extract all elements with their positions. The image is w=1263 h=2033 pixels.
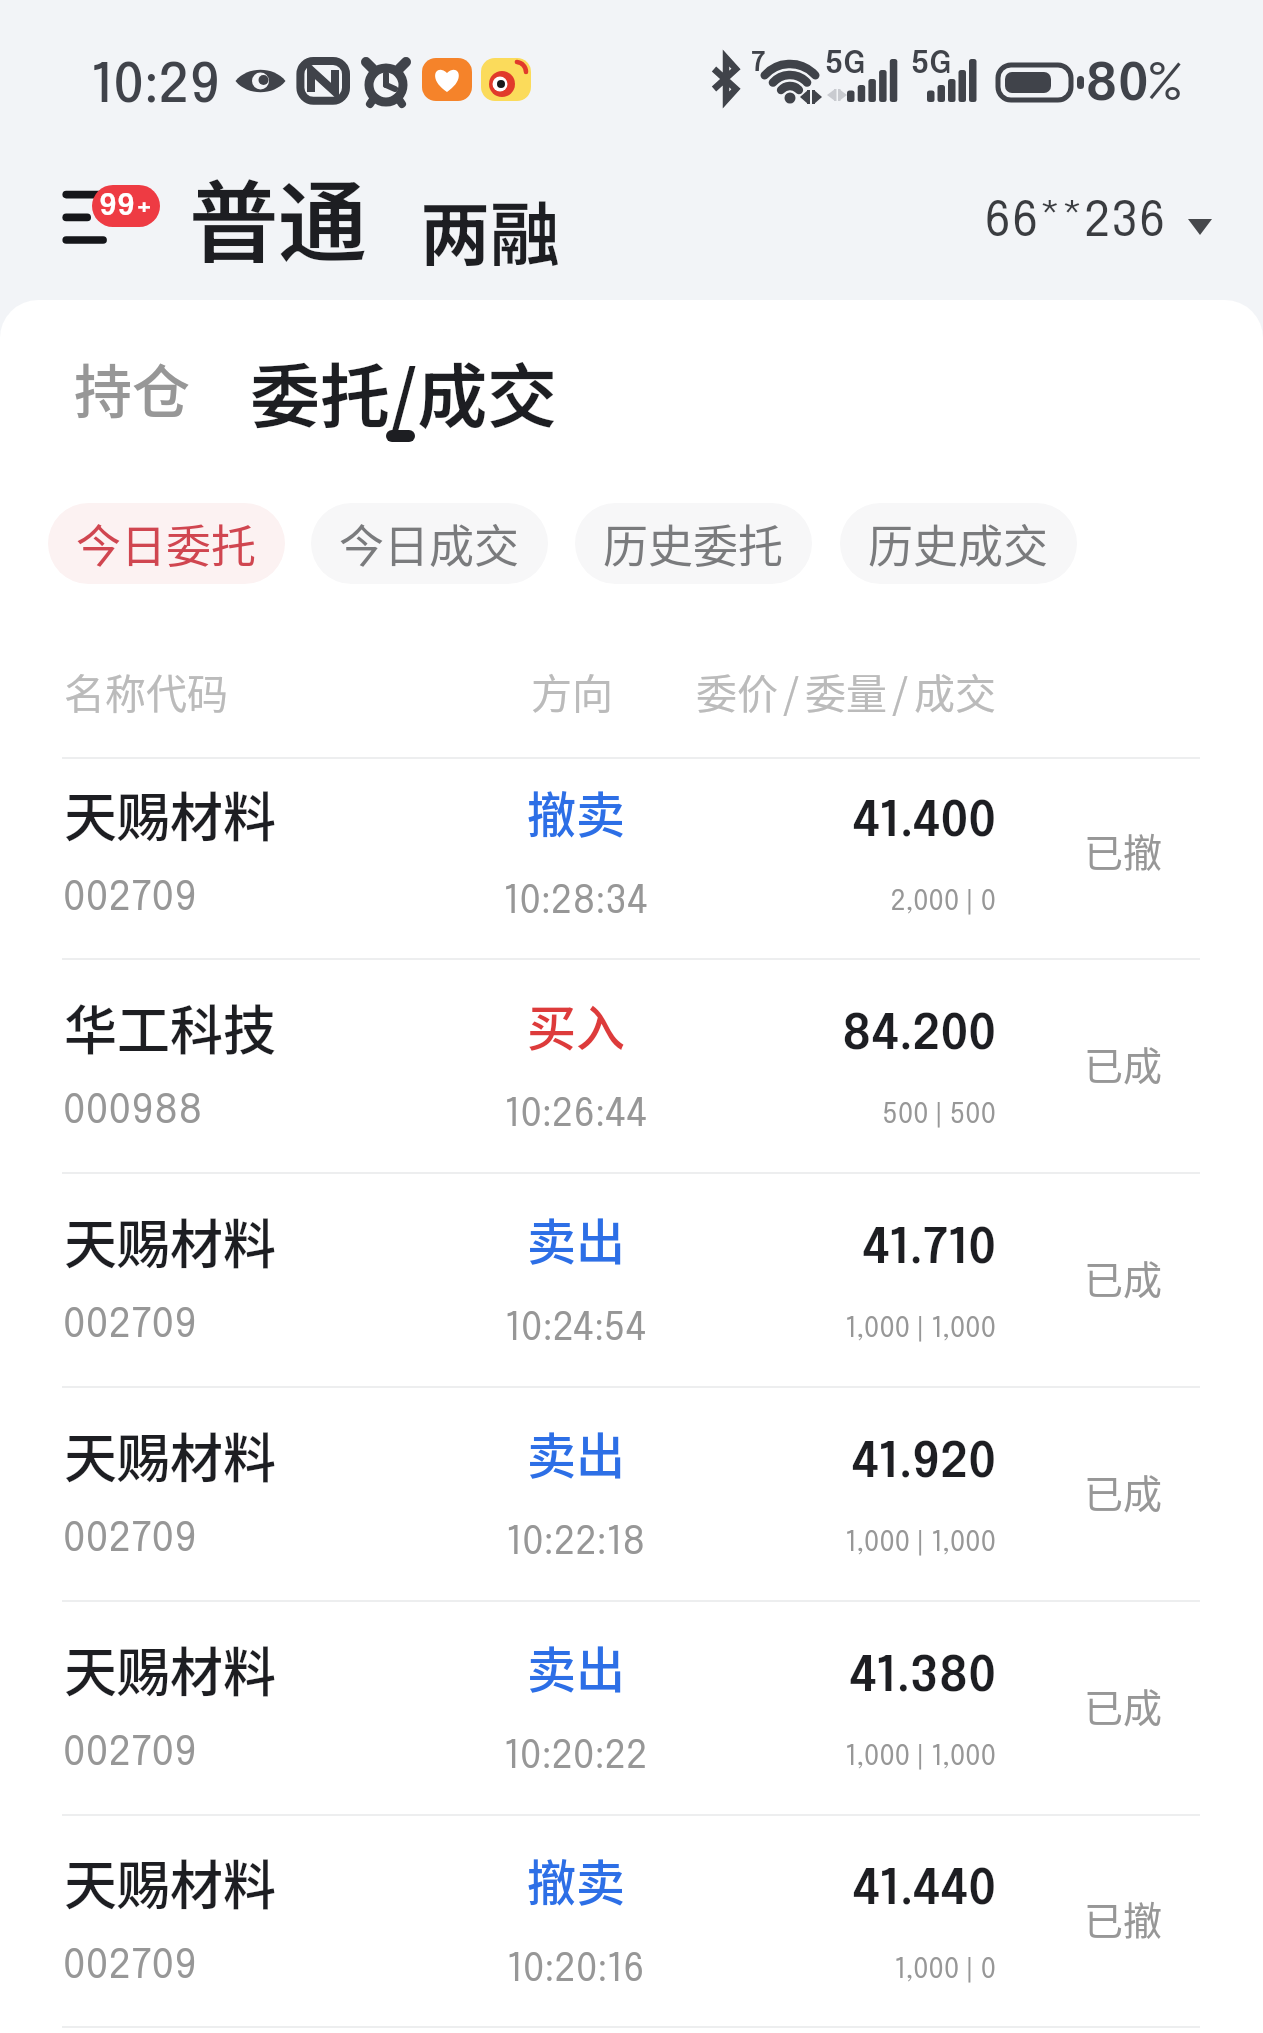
staticText: / (783, 661, 800, 720)
staticText: 持仓 (74, 346, 191, 430)
button[interactable]: 天赐材料 (0, 1600, 1263, 1814)
staticText: 买入 (446, 989, 706, 1060)
staticText: 成交 (914, 661, 996, 720)
staticText: 天赐材料 (64, 1417, 276, 1494)
button[interactable]: 今日委托 (48, 503, 285, 584)
staticText: 已撤 (1084, 822, 1163, 878)
button[interactable]: 两融 (420, 179, 560, 280)
staticText: 1,000 | 0 (696, 1957, 996, 1985)
button[interactable]: 历史委托 (575, 503, 812, 584)
button[interactable]: 持仓 (74, 346, 191, 430)
button[interactable]: 天赐材料 (0, 757, 1263, 958)
staticText: 002709 (63, 878, 197, 919)
staticText: 已成 (1084, 1249, 1163, 1305)
staticText: 002709 (63, 1519, 197, 1560)
staticText: 已成 (1084, 1035, 1163, 1091)
staticText: 99+ (99, 191, 154, 222)
button[interactable]: 历史成交 (840, 503, 1077, 584)
staticText: 41.440 (696, 1867, 996, 1915)
staticText: 已成 (1084, 1463, 1163, 1519)
staticText: 卖出 (446, 1203, 706, 1274)
staticText: 委托/成交 (250, 341, 558, 442)
staticText: 委量 (805, 661, 887, 720)
staticText: 41.920 (696, 1440, 996, 1488)
button[interactable]: 普通 (189, 152, 367, 281)
staticText: 今日成交 (339, 511, 520, 576)
staticText: 2,000 | 0 (696, 889, 996, 917)
staticText: / (892, 661, 909, 720)
staticText: 002709 (63, 1733, 197, 1774)
staticText: 历史成交 (868, 511, 1049, 576)
button[interactable]: 天赐材料 (0, 1172, 1263, 1386)
staticText: 华工科技 (64, 989, 276, 1066)
staticText: 80% (1085, 59, 1182, 112)
staticText: 10:24:54 (446, 1310, 706, 1349)
staticText: 41.710 (696, 1226, 996, 1274)
staticText: 两融 (420, 179, 560, 280)
staticText: 84.200 (696, 1012, 996, 1060)
staticText: 委价 (696, 661, 778, 720)
staticText: 5G (825, 49, 866, 81)
staticText: 天赐材料 (64, 1844, 276, 1921)
button[interactable]: 天赐材料 (0, 1814, 1263, 2026)
staticText: 002709 (63, 1946, 197, 1987)
staticText: 10:20:16 (446, 1951, 706, 1990)
staticText: 41.400 (696, 799, 996, 847)
button[interactable]: 66**236 (984, 198, 1212, 247)
staticText: 名称代码 (64, 661, 228, 720)
staticText: 天赐材料 (64, 776, 276, 853)
staticText: 41.380 (696, 1654, 996, 1702)
staticText: 普通 (189, 152, 367, 281)
staticText: 500 | 500 (696, 1102, 996, 1130)
button[interactable]: 华工科技 (0, 958, 1263, 1172)
button[interactable]: 天赐材料 (0, 1386, 1263, 1600)
staticText: 天赐材料 (64, 1631, 276, 1708)
staticText: 66**236 (984, 198, 1166, 247)
staticText: 10:20:22 (446, 1738, 706, 1777)
staticText: 卖出 (446, 1631, 706, 1702)
staticText: 今日委托 (76, 511, 257, 576)
staticText: 000988 (63, 1091, 203, 1132)
staticText: 1,000 | 1,000 (696, 1316, 996, 1344)
staticText: 卖出 (446, 1417, 706, 1488)
staticText: 方向 (442, 661, 702, 720)
staticText: 历史委托 (603, 511, 784, 576)
staticText: 7 (751, 50, 766, 78)
staticText: 10:29 (91, 60, 221, 114)
button[interactable]: Menu (48, 172, 172, 256)
staticText: 5G (911, 49, 952, 81)
button[interactable]: 今日成交 (311, 503, 548, 584)
staticText: 已撤 (1084, 1890, 1163, 1946)
staticText: 撤卖 (446, 776, 706, 847)
staticText: 天赐材料 (64, 1203, 276, 1280)
staticText: 10:26:44 (446, 1096, 706, 1135)
staticText: 撤卖 (446, 1844, 706, 1915)
button[interactable]: 委托/成交 (250, 341, 558, 454)
staticText: 1,000 | 1,000 (696, 1530, 996, 1558)
staticText: 002709 (63, 1305, 197, 1346)
staticText: 已成 (1084, 1677, 1163, 1733)
staticText: 10:22:18 (446, 1524, 706, 1563)
staticText: 10:28:34 (446, 883, 706, 922)
staticText: 1,000 | 1,000 (696, 1744, 996, 1772)
